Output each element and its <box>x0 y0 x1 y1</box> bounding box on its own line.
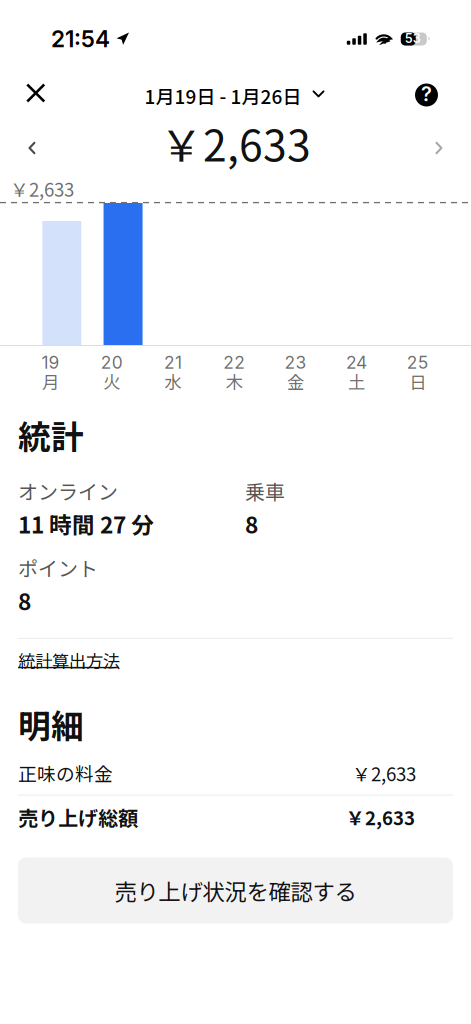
button[interactable]: 売り上げ状況を確認する <box>18 858 453 924</box>
staticText: 22 <box>223 352 245 373</box>
staticText: 水 <box>164 369 181 394</box>
staticText: 売り上げ総額 <box>18 803 138 832</box>
staticText: 土 <box>348 369 365 394</box>
staticText: 乗車 <box>245 476 285 505</box>
staticText: 金 <box>287 369 304 394</box>
staticText: オンライン <box>18 476 118 505</box>
staticText: 19 <box>42 352 60 373</box>
staticText: 1月19日 - 1月26日 <box>144 82 301 109</box>
staticText: 25 <box>407 352 429 373</box>
staticText: 20 <box>101 352 123 373</box>
staticText: ? <box>421 82 432 106</box>
button[interactable]: 統計算出方法 <box>18 639 120 677</box>
staticText: 日 <box>409 369 426 394</box>
staticText: 21:54 <box>51 25 110 53</box>
staticText: 統計算出方法 <box>18 648 120 673</box>
staticText: ￥2,633 <box>352 760 416 787</box>
staticText: 8 <box>245 507 258 540</box>
staticText: 木 <box>226 369 243 394</box>
button[interactable]: 1月19日 - 1月26日 <box>135 76 335 114</box>
staticText: ￥2,633 <box>346 804 415 831</box>
staticText: 正味の料金 <box>18 760 113 787</box>
staticText: ポイント <box>18 553 98 582</box>
staticText: 月 <box>42 369 59 394</box>
staticText: 21 <box>164 352 182 373</box>
staticText: 24 <box>346 352 367 373</box>
staticText: 火 <box>103 369 120 394</box>
staticText: ￥2,633 <box>10 175 74 202</box>
button[interactable]: Next week <box>425 131 453 164</box>
staticText: 53 <box>405 31 421 46</box>
button[interactable]: Close <box>18 77 53 113</box>
staticText: ￥2,633 <box>160 112 311 174</box>
staticText: 8 <box>18 584 31 617</box>
button[interactable]: Previous week <box>18 131 46 164</box>
staticText: 売り上げ状況を確認する <box>114 874 356 907</box>
staticText: 11 時間 27 分 <box>18 507 154 540</box>
button[interactable]: Help <box>408 76 453 113</box>
staticText: 23 <box>284 352 306 373</box>
staticText: 統計 <box>18 411 84 458</box>
staticText: 明細 <box>18 700 84 748</box>
